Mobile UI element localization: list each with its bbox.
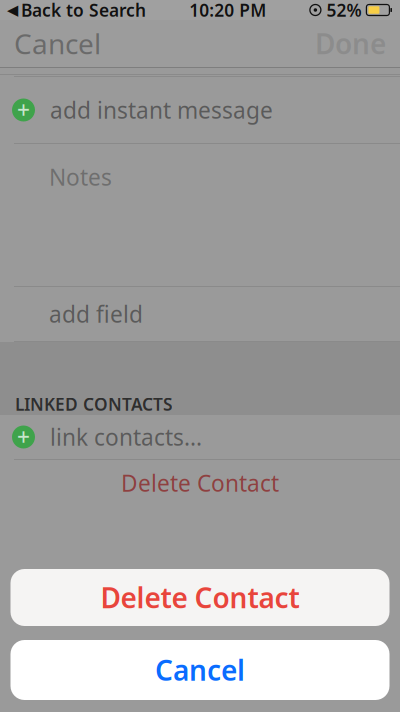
staticText: Delete Contact xyxy=(100,579,299,616)
button[interactable]: + xyxy=(0,415,400,459)
button[interactable]: Cancel xyxy=(10,640,389,700)
staticText: 10:20 PM xyxy=(189,0,266,21)
staticText: Back to Search xyxy=(21,0,146,21)
button[interactable]: Cancel xyxy=(0,16,115,71)
staticText: LINKED CONTACTS xyxy=(15,392,173,415)
staticText: Cancel xyxy=(155,651,245,689)
staticText: ◀ xyxy=(7,2,18,18)
staticText: + xyxy=(17,95,30,125)
button[interactable]: Delete Contact xyxy=(10,569,389,626)
staticText: Delete Contact xyxy=(121,468,279,498)
staticText: Cancel xyxy=(14,25,101,62)
staticText: add instant message xyxy=(50,95,273,125)
staticText: Done xyxy=(315,25,386,62)
button[interactable]: add field xyxy=(0,287,400,341)
button[interactable]: Back to Search xyxy=(0,0,146,21)
staticText: Notes xyxy=(49,162,112,192)
staticText: add field xyxy=(49,299,143,329)
staticText: 52% xyxy=(326,0,361,21)
button[interactable]: + xyxy=(0,77,400,143)
staticText: link contacts... xyxy=(50,422,202,452)
button[interactable]: Done xyxy=(301,16,400,71)
staticText: + xyxy=(17,422,30,452)
button[interactable]: Delete Contact xyxy=(0,460,400,506)
